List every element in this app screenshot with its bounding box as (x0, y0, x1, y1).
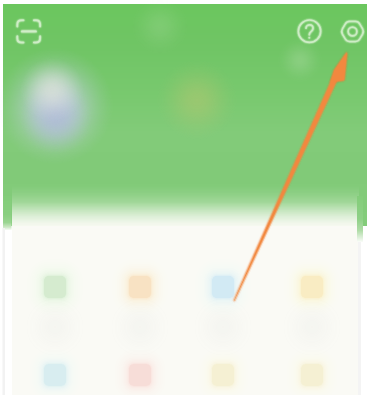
button[interactable]: Help (298, 18, 325, 45)
button[interactable]: Scan (16, 19, 43, 46)
button[interactable]: Settings (336, 18, 364, 46)
